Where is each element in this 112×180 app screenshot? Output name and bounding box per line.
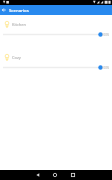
button[interactable]: Home	[49, 170, 61, 180]
button[interactable]: Back	[0, 5, 8, 15]
button[interactable]: Back	[32, 170, 44, 180]
staticText: Cozy	[12, 55, 21, 60]
button[interactable]: Recents	[67, 170, 79, 180]
staticText: Kitchen	[12, 22, 27, 27]
button[interactable]: Cozy	[0, 54, 112, 70]
staticText: Scenarios	[9, 7, 29, 13]
button[interactable]: Kitchen	[0, 21, 112, 37]
staticText: 100%	[102, 66, 110, 70]
staticText: 100%	[102, 33, 110, 37]
